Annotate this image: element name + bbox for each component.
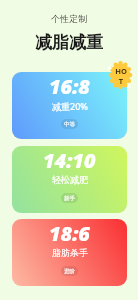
staticText: 新手 [64, 195, 75, 202]
staticText: 中等 [64, 121, 75, 128]
staticText: 14:10 [43, 147, 96, 174]
button[interactable]: 新手 [64, 193, 75, 203]
staticText: 减脂减重 [35, 32, 103, 53]
staticText: 进阶 [64, 268, 75, 275]
staticText: HOT [115, 66, 127, 86]
other: Hot plan [109, 61, 132, 89]
button[interactable]: 中等 [64, 119, 75, 129]
staticText: 轻松减肥 [52, 174, 88, 185]
button[interactable]: 16:8 [12, 72, 127, 139]
staticText: 减重20% [52, 100, 88, 112]
staticText: 脂肪杀手 [52, 247, 88, 258]
staticText: 18:6 [49, 220, 90, 247]
button[interactable]: 18:6 [12, 219, 127, 286]
button[interactable]: 14:10 [12, 146, 127, 213]
button[interactable]: 进阶 [64, 266, 75, 276]
staticText: 16:8 [49, 73, 90, 100]
staticText: 个性定制 [51, 13, 87, 24]
